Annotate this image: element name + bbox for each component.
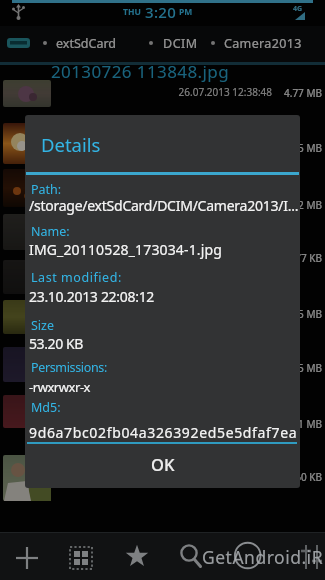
staticText: 9d6a7bc02fb04a326392ed5e5dfaf7ea bbox=[29, 423, 298, 442]
button[interactable] bbox=[0, 28, 36, 62]
button[interactable]: OK bbox=[26, 443, 299, 485]
staticText: 4G bbox=[293, 4, 303, 14]
staticText: 4.77 MB bbox=[283, 86, 322, 100]
staticText: Path: bbox=[31, 181, 62, 198]
staticText: 4.05 MB bbox=[283, 141, 322, 155]
staticText: DCIM bbox=[163, 35, 198, 52]
staticText: GetAndroid.iR bbox=[202, 545, 324, 569]
staticText: THU bbox=[123, 6, 141, 18]
staticText: 26.07.2013 12:38:48 bbox=[178, 85, 272, 99]
staticText: Persmissions: bbox=[31, 359, 107, 376]
staticText: Last modified: bbox=[31, 269, 122, 286]
button[interactable] bbox=[0, 64, 325, 115]
staticText: IMG_20110528_173034-1.jpg bbox=[29, 240, 223, 259]
staticText: 977 KB bbox=[289, 251, 322, 265]
staticText: /storage/extSdCard/DCIM/Camera2013/I... bbox=[29, 196, 299, 215]
staticText: 3:20 bbox=[145, 2, 177, 22]
button[interactable] bbox=[208, 28, 310, 62]
staticText: 2.85 MB bbox=[283, 307, 322, 321]
staticText: extSdCard bbox=[56, 35, 116, 52]
staticText: 5.11 MB bbox=[283, 417, 322, 431]
button[interactable] bbox=[115, 535, 159, 579]
staticText: 20130726 113848.jpg bbox=[51, 60, 230, 83]
staticText: Size bbox=[31, 317, 55, 334]
staticText: Camera2013 bbox=[224, 35, 302, 52]
staticText: Details bbox=[41, 132, 101, 157]
button[interactable] bbox=[168, 534, 212, 578]
staticText: 760 KB bbox=[289, 470, 322, 484]
staticText: 3.65 MB bbox=[283, 361, 322, 375]
staticText: -rwxrwxr-x bbox=[29, 378, 91, 396]
staticText: Name: bbox=[31, 223, 70, 240]
button[interactable] bbox=[36, 28, 146, 62]
staticText: 23.10.2013 22:08:12 bbox=[29, 287, 155, 306]
staticText: 53.20 KB bbox=[29, 334, 83, 353]
button[interactable] bbox=[290, 536, 325, 580]
staticText: 3.12 MB bbox=[283, 198, 322, 212]
staticText: PM bbox=[179, 6, 193, 18]
staticText: Md5: bbox=[31, 399, 61, 416]
button[interactable] bbox=[146, 28, 208, 62]
button[interactable] bbox=[59, 536, 103, 580]
button[interactable] bbox=[5, 536, 49, 580]
staticText: OK bbox=[151, 453, 175, 475]
